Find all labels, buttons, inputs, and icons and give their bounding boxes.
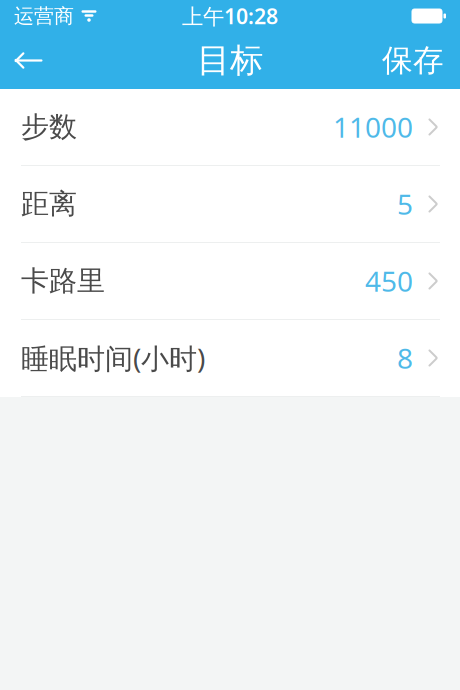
- staticText: 5: [397, 185, 413, 223]
- staticText: 11000: [333, 108, 413, 146]
- staticText: 目标: [197, 40, 263, 81]
- button[interactable]: 步数: [0, 89, 460, 166]
- staticText: 上午10:28: [182, 2, 278, 30]
- staticText: 运营商: [14, 4, 74, 28]
- staticText: 8: [397, 339, 413, 377]
- staticText: 保存: [382, 42, 444, 79]
- button[interactable]: 返回: [0, 32, 58, 89]
- staticText: 睡眠时间(小时): [21, 339, 205, 377]
- staticText: 距离: [21, 187, 77, 221]
- button[interactable]: 距离: [0, 166, 460, 243]
- staticText: 卡路里: [21, 264, 105, 298]
- staticText: 450: [365, 262, 413, 300]
- button[interactable]: 保存: [366, 32, 460, 89]
- button[interactable]: 卡路里: [0, 243, 460, 320]
- staticText: 步数: [21, 110, 77, 144]
- button[interactable]: 睡眠时间(小时): [0, 320, 460, 397]
